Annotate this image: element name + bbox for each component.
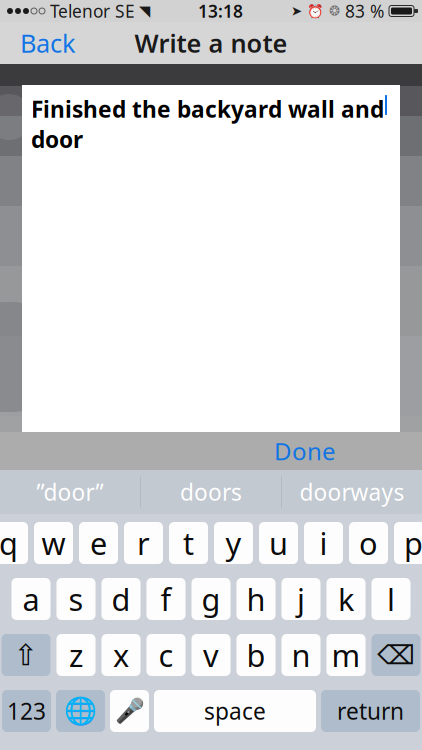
button[interactable]: Shift [1, 634, 50, 676]
staticText: space [204, 696, 266, 726]
staticText: v [203, 635, 219, 675]
button[interactable]: Delete [371, 634, 420, 676]
staticText: r [137, 523, 150, 563]
button[interactable]: i [304, 522, 343, 564]
staticText: ”door” [36, 477, 103, 507]
button[interactable]: n [281, 634, 320, 676]
staticText: z [69, 635, 83, 675]
staticText: 13:18 [198, 0, 243, 22]
staticText: Write a note [134, 26, 287, 60]
staticText: ➤ [291, 3, 302, 18]
staticText: Finished the backyard wall and door [31, 94, 384, 154]
staticText: b [246, 635, 265, 675]
staticText: x [113, 635, 129, 675]
staticText: c [158, 635, 173, 675]
staticText: n [291, 635, 310, 675]
button[interactable]: Done [256, 432, 354, 470]
staticText: u [269, 523, 288, 563]
button[interactable]: j [281, 578, 320, 620]
button[interactable]: r [124, 522, 163, 564]
staticText: t [183, 523, 194, 563]
button[interactable]: doors [141, 470, 281, 514]
staticText: f [160, 579, 171, 619]
staticText: k [338, 579, 354, 619]
button[interactable]: l [371, 578, 410, 620]
staticText: 🎤 [114, 697, 144, 725]
button[interactable]: x [101, 634, 140, 676]
staticText: Done [274, 435, 336, 467]
staticText: q [0, 523, 18, 563]
staticText: d [111, 579, 130, 619]
button[interactable]: h [236, 578, 275, 620]
staticText: y [225, 523, 241, 563]
button[interactable]: Dictate [110, 690, 149, 732]
button[interactable]: c [146, 634, 185, 676]
staticText: doorways [299, 477, 404, 507]
button[interactable]: q [0, 522, 28, 564]
staticText: s [68, 579, 83, 619]
button[interactable]: k [326, 578, 365, 620]
staticText: 🌐 [64, 696, 97, 726]
button[interactable]: e [79, 522, 118, 564]
button[interactable]: u [259, 522, 298, 564]
button[interactable]: w [34, 522, 73, 564]
staticText: ◥ [139, 3, 150, 19]
staticText: 83 % [345, 0, 384, 22]
staticText: g [201, 579, 220, 619]
staticText: 123 [7, 696, 46, 726]
button[interactable]: Numbers [2, 690, 51, 732]
staticText: ⏰ [307, 3, 324, 19]
staticText: doors [180, 477, 242, 507]
staticText: w [41, 523, 65, 563]
button[interactable]: doorways [282, 470, 422, 514]
button[interactable]: f [146, 578, 185, 620]
button[interactable]: o [349, 522, 388, 564]
staticText: p [404, 523, 422, 563]
staticText: e [90, 523, 107, 563]
staticText: h [246, 579, 265, 619]
staticText: ⇧ [13, 638, 38, 672]
staticText: m [331, 635, 360, 675]
button[interactable]: Next keyboard [56, 690, 105, 732]
staticText: a [22, 579, 39, 619]
button[interactable]: s [56, 578, 95, 620]
staticText: return [337, 696, 404, 726]
button[interactable]: y [214, 522, 253, 564]
button[interactable]: t [169, 522, 208, 564]
button[interactable]: space [154, 690, 316, 732]
button[interactable]: a [11, 578, 50, 620]
button[interactable]: z [56, 634, 95, 676]
staticText: o [359, 523, 378, 563]
button[interactable]: g [191, 578, 230, 620]
button[interactable]: p [394, 522, 422, 564]
staticText: l [387, 579, 395, 619]
button[interactable]: v [191, 634, 230, 676]
button[interactable]: Back [0, 22, 90, 64]
button[interactable]: return [321, 690, 420, 732]
button[interactable]: m [326, 634, 365, 676]
staticText: ⌫ [377, 640, 415, 670]
staticText: Telenor SE [50, 0, 135, 22]
button[interactable]: d [101, 578, 140, 620]
staticText: Back [20, 26, 76, 60]
button[interactable]: ”door” [0, 470, 140, 514]
staticText: ❂ [329, 3, 340, 18]
button[interactable]: b [236, 634, 275, 676]
staticText: i [319, 523, 327, 563]
staticText: j [297, 579, 305, 619]
